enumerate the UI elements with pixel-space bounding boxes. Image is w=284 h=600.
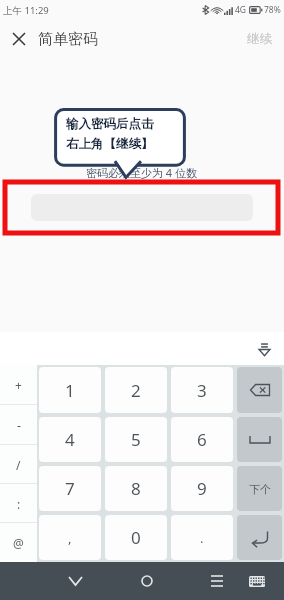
button[interactable]: Home [130,564,164,598]
staticText: 1 [65,379,75,402]
button[interactable]: 7 [39,466,101,511]
button[interactable]: 6 [171,417,233,462]
button[interactable]: 8 [105,466,167,511]
button[interactable]: 0 [105,515,167,560]
staticText: 9 [197,477,207,500]
staticText: 4 [65,428,75,451]
button[interactable]: Switch keyboard [240,564,274,598]
button[interactable]: 9 [171,466,233,511]
button[interactable]: Enter [237,515,282,560]
button[interactable]: 3 [171,367,233,413]
staticText: 5 [131,428,141,451]
staticText: 下个 [249,482,271,496]
button[interactable]: Close [5,25,33,53]
staticText: - [17,417,21,433]
staticText: : [17,496,21,512]
staticText: 简单密码 [38,30,98,49]
button[interactable]: 5 [105,417,167,462]
staticText: , [68,529,72,547]
staticText: 7 [65,477,75,500]
button[interactable]: Recents [200,564,234,598]
staticText: @ [13,535,24,551]
staticText: 3 [197,379,207,402]
staticText: 0 [131,526,141,549]
staticText: / [16,457,21,473]
staticText: 78% [264,4,281,16]
staticText: 右上角【继续】 [66,136,154,152]
button[interactable]: 继续 [235,22,284,56]
staticText: 6 [197,428,207,451]
button[interactable]: 4 [39,417,101,462]
button[interactable]: Next field [237,466,282,511]
staticText: 2 [131,379,141,402]
staticText: 密码必须至少为 4 位数 [86,165,198,180]
staticText: 继续 [247,31,272,47]
staticText: + [15,377,22,393]
button[interactable]: . [171,515,233,560]
button[interactable]: Space [237,417,282,462]
staticText: 4G [235,4,247,16]
button[interactable]: : [0,484,37,523]
staticText: . [200,529,204,547]
button[interactable]: , [39,515,101,560]
button[interactable]: 2 [105,367,167,413]
button[interactable]: / [0,445,37,484]
button[interactable]: @ [0,523,37,562]
staticText: 上午 11:29 [3,4,49,17]
button[interactable]: 1 [39,367,101,413]
button[interactable]: Back [58,564,92,598]
staticText: 输入密码后点击 [66,116,154,132]
button[interactable]: Hide keyboard [251,336,277,362]
button[interactable]: + [0,365,37,405]
button[interactable]: Backspace [237,367,282,413]
button[interactable]: - [0,405,37,445]
staticText: 8 [131,477,141,500]
